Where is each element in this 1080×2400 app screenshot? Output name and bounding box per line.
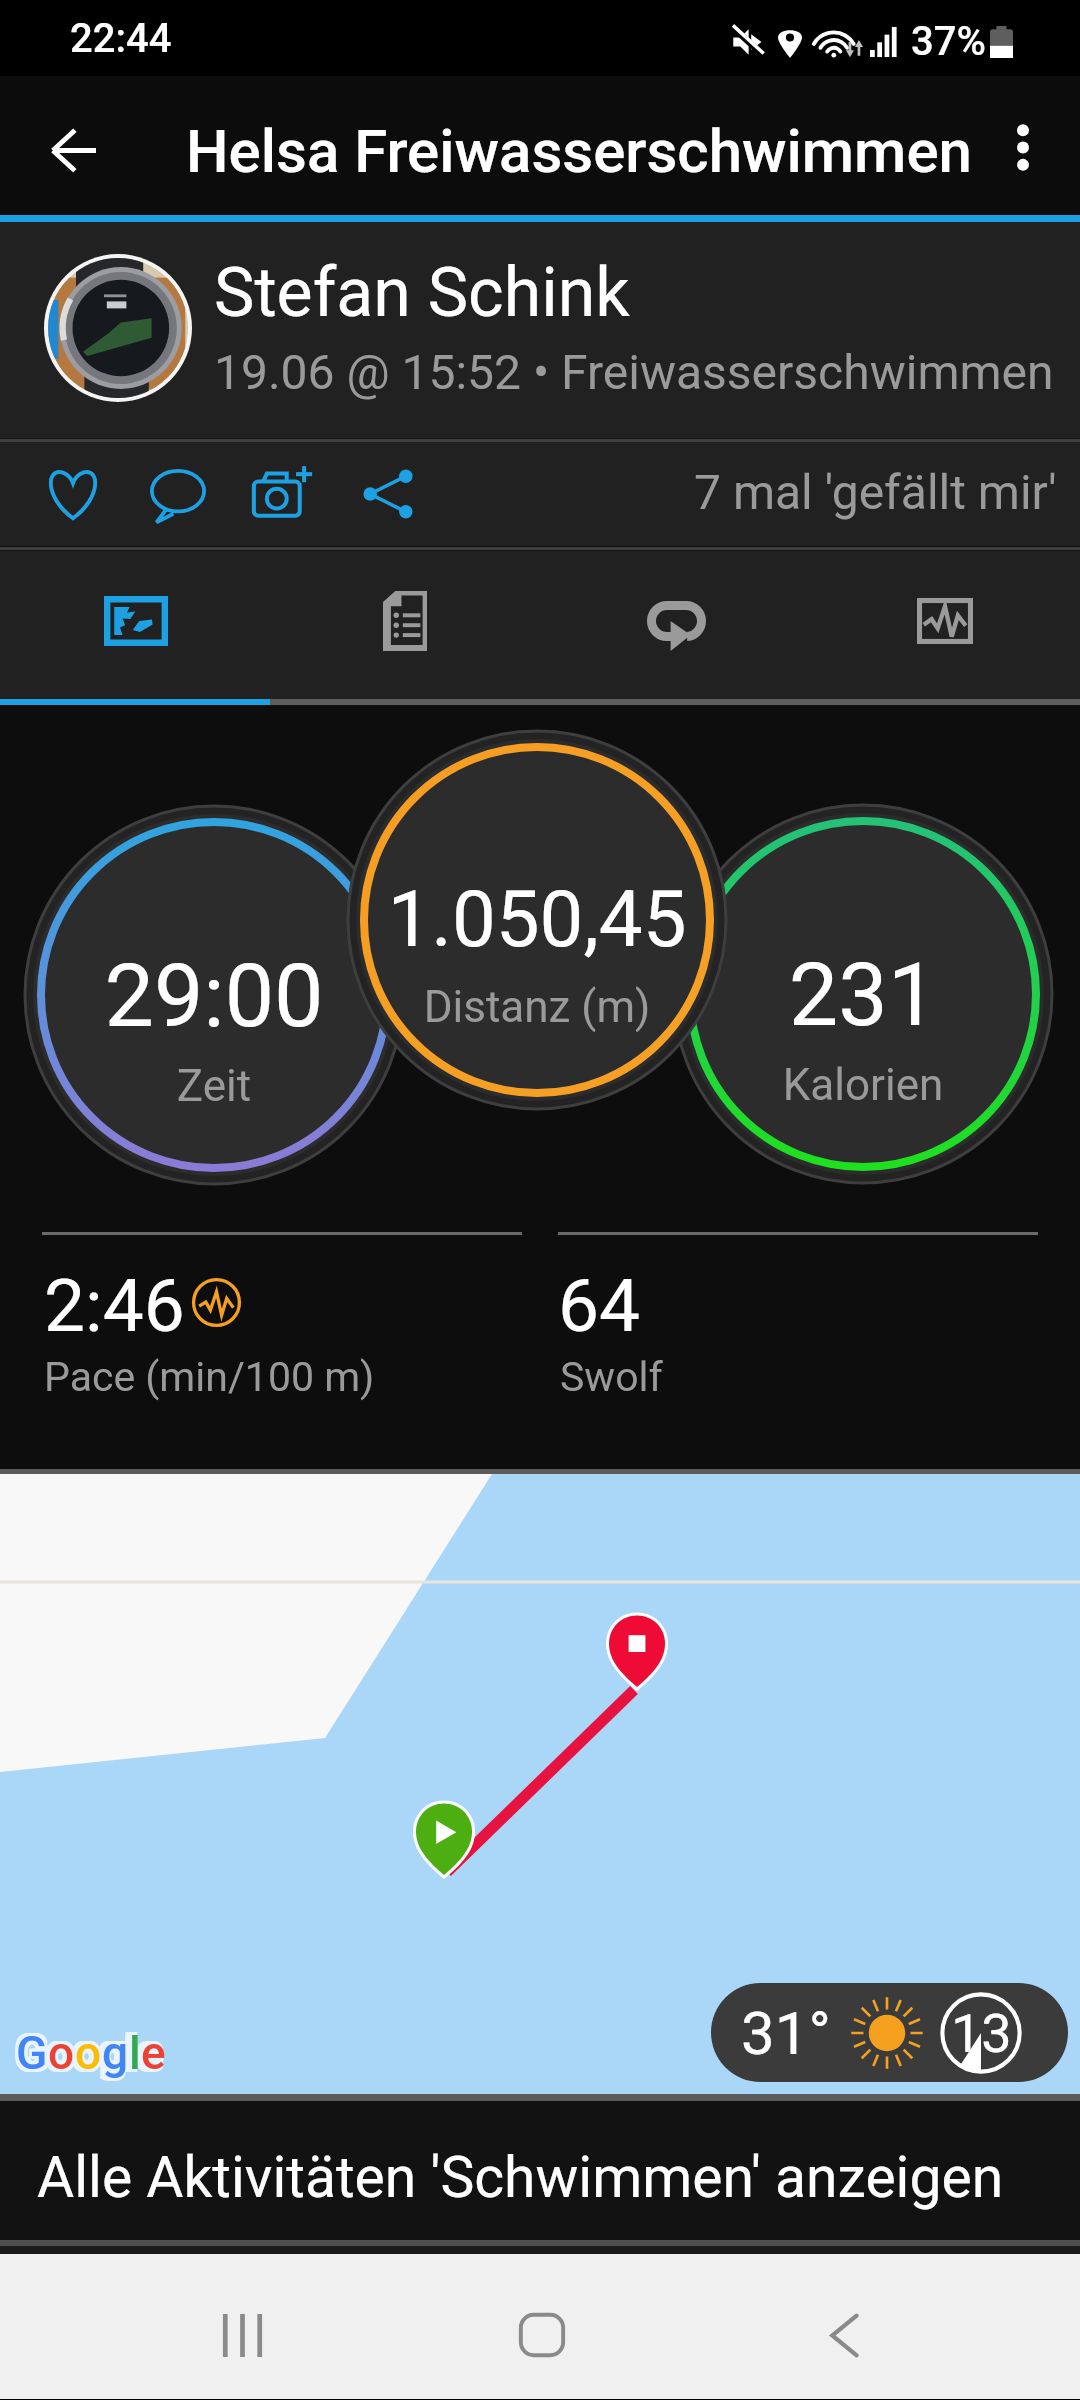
staticText: Kalorien [563,1059,1080,1111]
staticText: o [75,2026,102,2080]
staticText: Alle Aktivitäten 'Schwimmen' anzeigen [37,2144,1004,2211]
staticText: Zeit [0,1060,514,1112]
button[interactable]: Comment [125,442,230,546]
button[interactable]: Add photo [230,442,335,546]
staticText: Google [19,2029,165,2083]
staticText: 19.06 @ 15:52 • Freiwasserschwimmen [214,344,1054,400]
staticText: 22:44 [70,15,172,62]
button[interactable]: Home [462,2275,622,2395]
staticText: o [48,2026,75,2080]
button[interactable]: Back [764,2275,924,2395]
button[interactable]: Stefan Schink [0,222,1080,438]
staticText: G [16,2026,48,2080]
staticText: 37% [911,18,986,65]
staticText: Google [16,2023,162,2077]
staticText: 64 [558,1263,641,1349]
button[interactable]: Alle Aktivitäten 'Schwimmen' anzeigen [0,2101,1080,2240]
staticText: Stefan Schink [214,253,630,333]
staticText: 29:00 [0,944,514,1047]
button[interactable]: Map [0,551,270,699]
staticText: l [129,2026,141,2080]
button[interactable]: Weather: 31 degrees, sunny, wind 13 [711,1983,1068,2082]
button[interactable]: Back [32,108,116,192]
staticText: 231 [563,943,1080,1046]
staticText: Google [16,2026,162,2080]
staticText: Swolf [560,1353,663,1401]
staticText: Helsa Freiwasserschwimmen [186,116,972,186]
staticText: 7 mal 'gefällt mir' [694,464,1057,520]
button[interactable]: More options [981,106,1064,189]
button[interactable]: Charts [810,551,1080,699]
staticText: Google [19,2023,165,2077]
button[interactable]: Details [270,551,540,699]
staticText: 31° [741,1998,831,2068]
staticText: e [141,2026,166,2080]
staticText: Google [13,2023,159,2077]
staticText: Distanz (m) [237,981,837,1033]
staticText: 2:46 [44,1263,185,1349]
staticText: Google [16,2029,162,2083]
button[interactable]: Recent apps [162,2275,322,2395]
button[interactable]: Laps [540,551,810,699]
staticText: g [102,2026,129,2080]
staticText: 13 [951,2002,1012,2065]
button[interactable]: Share [335,442,440,546]
staticText: Google [19,2026,165,2080]
staticText: Google [13,2029,159,2083]
staticText: Google [13,2026,159,2080]
staticText: Pace (min/100 m) [44,1353,375,1401]
staticText: 1.050,45 [237,874,837,965]
button[interactable]: Like [20,442,125,546]
